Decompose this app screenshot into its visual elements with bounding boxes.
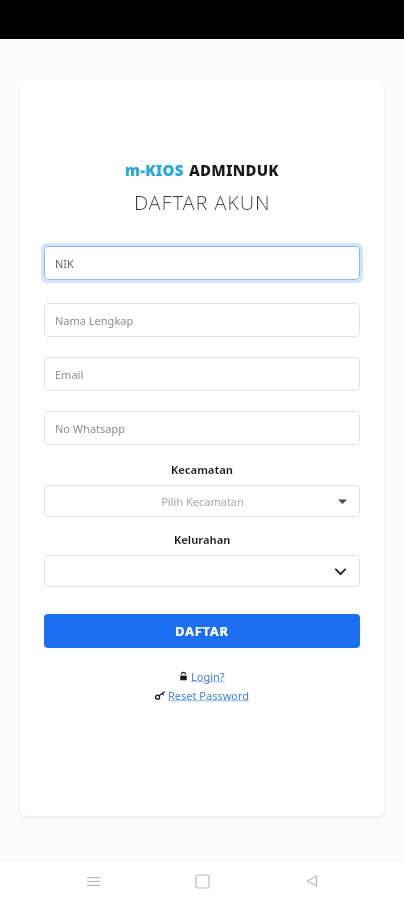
staticText: m-KIOS: [125, 160, 184, 180]
staticText: Kelurahan: [174, 532, 231, 547]
staticText: No Whatsapp: [55, 421, 126, 436]
button[interactable]: No Whatsapp: [44, 411, 360, 445]
button[interactable]: Login?: [175, 668, 229, 685]
staticText: ADMINDUK: [189, 160, 279, 180]
staticText: DAFTAR AKUN: [134, 189, 271, 216]
button[interactable]: Recent apps: [76, 864, 110, 898]
button[interactable]: Home: [185, 864, 219, 898]
staticText: Kecamatan: [171, 462, 233, 477]
staticText: Pilih Kecamatan: [161, 494, 244, 509]
button[interactable]: NIK: [44, 246, 360, 280]
button[interactable]: Back: [295, 864, 329, 898]
button[interactable]: Pilih Kelurahan: [44, 555, 360, 587]
staticText: Login?: [191, 669, 225, 684]
staticText: Reset Password: [168, 688, 250, 703]
button[interactable]: Pilih Kecamatan: [44, 485, 360, 517]
staticText: NIK: [55, 256, 74, 271]
button[interactable]: Nama Lengkap: [44, 303, 360, 337]
staticText: Email: [55, 367, 84, 382]
staticText: DAFTAR: [175, 622, 229, 640]
button[interactable]: DAFTAR: [44, 614, 360, 648]
button[interactable]: Reset Password: [151, 687, 254, 704]
staticText: Nama Lengkap: [55, 313, 134, 328]
button[interactable]: Email: [44, 357, 360, 391]
